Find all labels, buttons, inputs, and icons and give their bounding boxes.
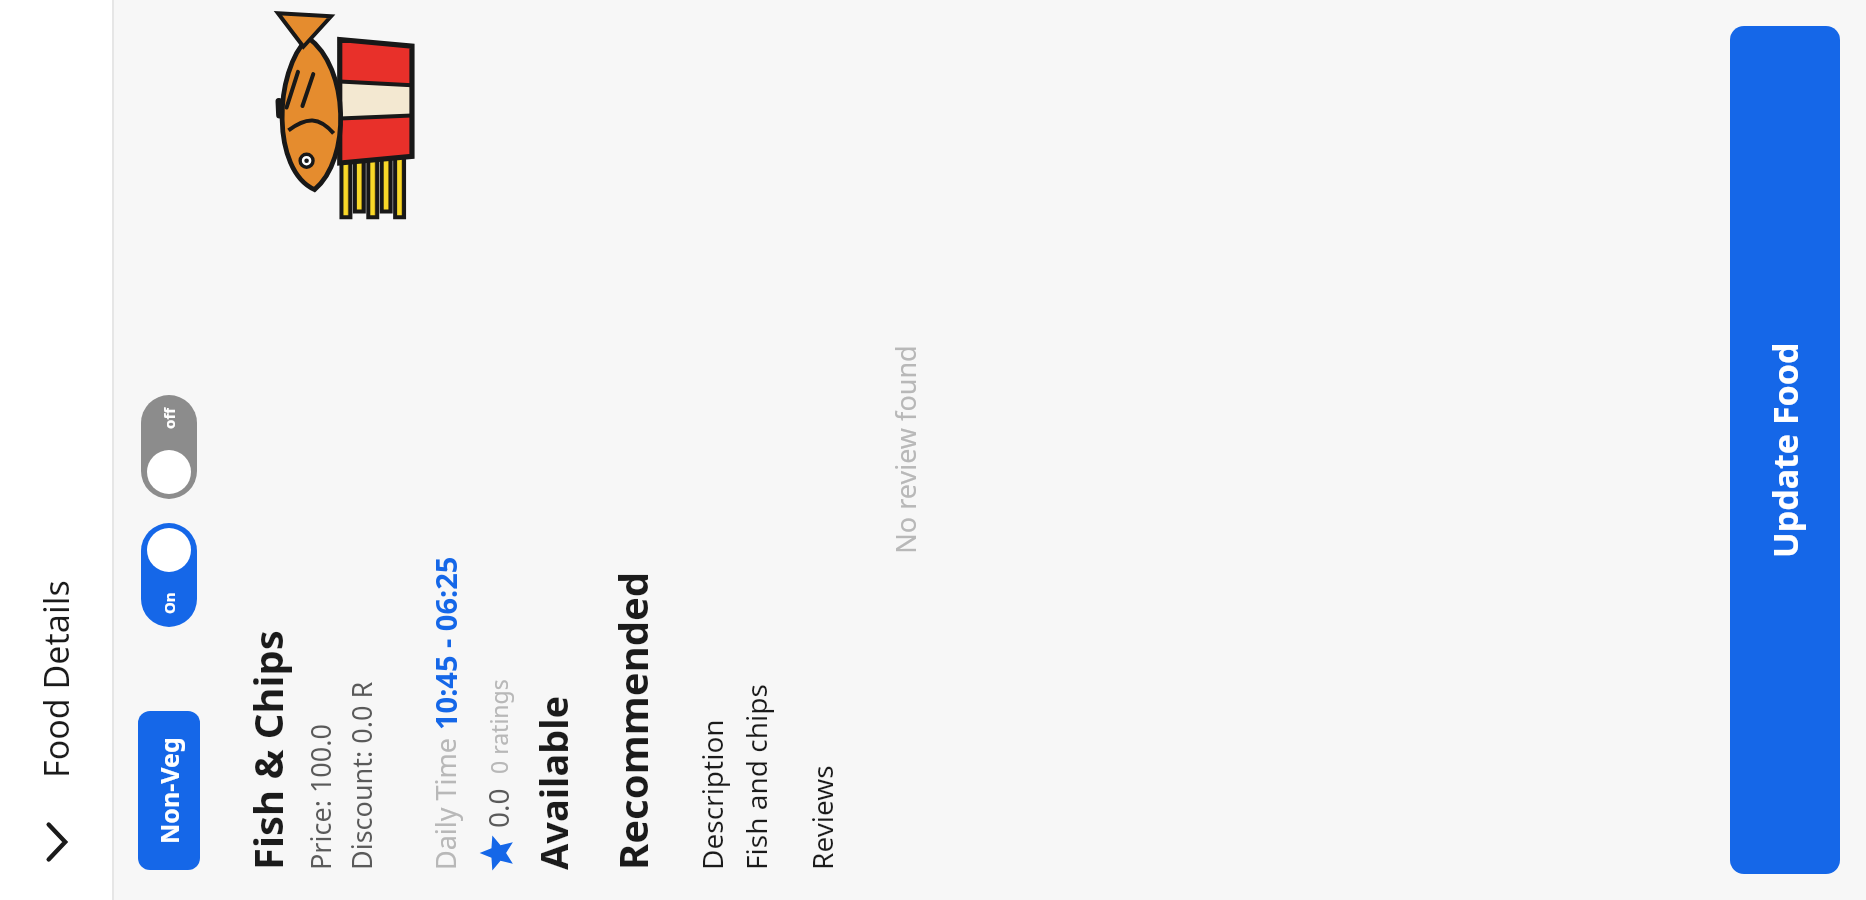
staticText: 0 ratings <box>483 679 514 774</box>
staticText: Reviews <box>803 765 841 870</box>
staticText: Non-Veg <box>152 737 186 844</box>
staticText: Price: 100.0 <box>302 724 339 870</box>
staticText: Fish & Chips <box>240 630 294 870</box>
button[interactable]: Toggle On <box>141 523 197 627</box>
button[interactable]: Non-Veg <box>138 711 200 870</box>
staticText: 10:45 - 06:25 <box>426 556 465 730</box>
staticText: off <box>159 408 179 429</box>
staticText: No review found <box>887 345 924 554</box>
staticText: Discount: 0.0 R <box>343 681 380 870</box>
staticText: 0.0 <box>479 788 517 828</box>
staticText: Update Food <box>1762 342 1808 558</box>
staticText: Available <box>527 695 579 870</box>
staticText: On <box>159 592 179 614</box>
button[interactable]: Back <box>24 810 88 874</box>
staticText: Fish and chips <box>737 684 775 870</box>
button[interactable]: Update Food <box>1730 26 1840 874</box>
button[interactable]: Toggle off <box>141 395 197 499</box>
staticText: Recommended <box>605 571 659 870</box>
staticText: Daily Time <box>427 730 464 870</box>
staticText: Description <box>693 719 731 870</box>
staticText: Food Details <box>33 580 79 778</box>
